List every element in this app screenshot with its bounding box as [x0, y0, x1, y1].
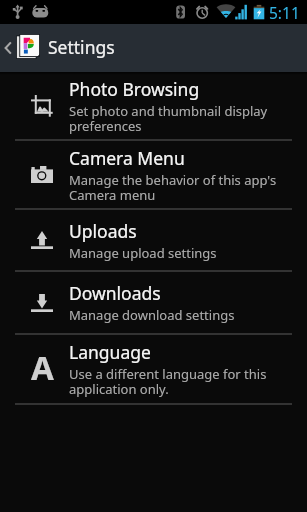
other: Navigate up — [0, 24, 15, 72]
staticText: Manage upload settings — [69, 244, 217, 262]
staticText: Downloads — [69, 281, 161, 305]
button[interactable]: Uploads — [0, 210, 307, 270]
staticText: Manage the behavior of this app's Camera… — [69, 171, 277, 204]
staticText: Camera Menu — [69, 146, 185, 170]
staticText: Use a different language for this applic… — [69, 365, 267, 398]
staticText: Photo Browsing — [69, 77, 200, 101]
staticText: Settings — [48, 35, 115, 59]
staticText: 5:11 — [269, 2, 300, 23]
button[interactable]: Camera Menu — [0, 141, 307, 208]
staticText: Uploads — [69, 219, 137, 243]
staticText: A — [31, 345, 54, 385]
button[interactable]: Navigate up — [0, 24, 115, 72]
staticText: Set photo and thumbnail display preferen… — [69, 102, 268, 135]
button[interactable]: Photo Browsing — [0, 72, 307, 139]
staticText: Manage download settings — [69, 306, 235, 324]
button[interactable]: A — [0, 335, 307, 403]
staticText: Language — [69, 340, 151, 364]
button[interactable]: Downloads — [0, 272, 307, 333]
